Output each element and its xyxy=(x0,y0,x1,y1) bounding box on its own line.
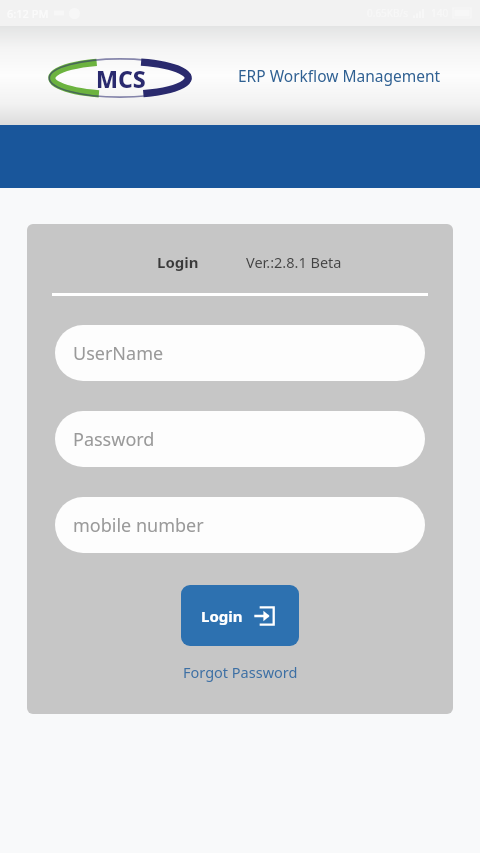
staticText: MCS xyxy=(96,63,146,94)
button[interactable]: Forgot Password xyxy=(177,660,304,684)
staticText: ERP Workflow Management xyxy=(238,65,441,86)
staticText: Login xyxy=(201,606,243,626)
staticText: Password xyxy=(73,427,155,452)
staticText: Ver.:2.8.1 Beta xyxy=(246,252,342,272)
button[interactable]: mobile number xyxy=(55,497,425,553)
staticText: UserName xyxy=(73,341,164,366)
staticText: mobile number xyxy=(73,513,204,538)
button[interactable]: Login xyxy=(181,585,299,646)
staticText: Forgot Password xyxy=(183,662,298,682)
staticText: Login xyxy=(157,252,199,272)
button[interactable]: UserName xyxy=(55,325,425,381)
button[interactable]: Password xyxy=(55,411,425,467)
